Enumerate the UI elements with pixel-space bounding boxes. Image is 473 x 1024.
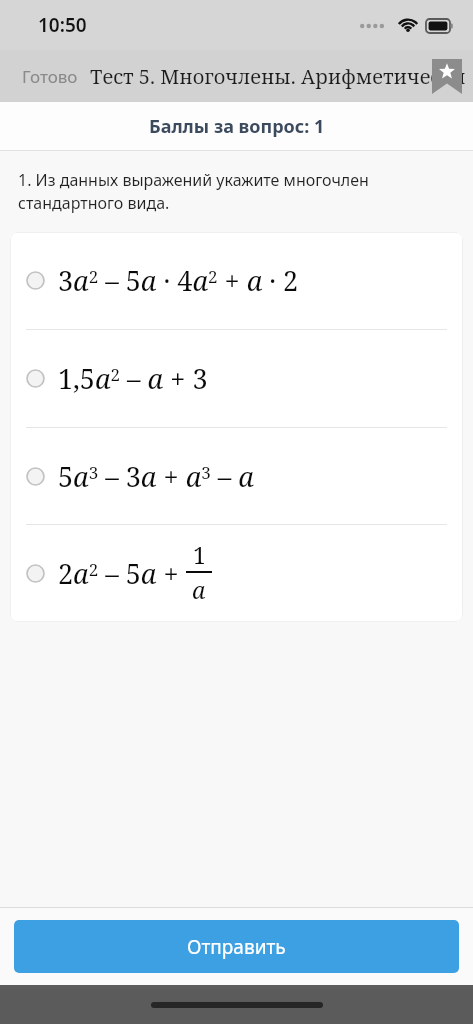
- staticText: Отправить: [187, 934, 286, 960]
- staticText: 1,5a2 – a + 3: [58, 360, 208, 397]
- staticText: a: [192, 574, 206, 605]
- staticText: 5a3 – 3a + a3 – a: [58, 458, 254, 495]
- button[interactable]: 5a3 – 3a + a3 – a: [10, 428, 463, 524]
- staticText: 1: [193, 539, 206, 570]
- staticText: 1. Из данных выражений укажите многочлен…: [18, 169, 369, 214]
- button[interactable]: 2a2 – 5a +: [10, 525, 463, 622]
- button[interactable]: Bookmark: [426, 55, 468, 97]
- staticText: 3a2 – 5a · 4a2 + a · 2: [58, 262, 299, 299]
- staticText: Баллы за вопрос: 1: [149, 114, 325, 139]
- staticText: Тест 5. Многочлены. Арифметически: [90, 63, 466, 90]
- staticText: 10:50: [38, 12, 87, 38]
- button[interactable]: Готово: [0, 57, 82, 96]
- button[interactable]: Отправить: [14, 920, 459, 973]
- button[interactable]: 1,5a2 – a + 3: [10, 330, 463, 427]
- button[interactable]: 3a2 – 5a · 4a2 + a · 2: [10, 232, 463, 329]
- staticText: Готово: [22, 65, 78, 88]
- staticText: 2a2 – 5a +: [58, 555, 186, 592]
